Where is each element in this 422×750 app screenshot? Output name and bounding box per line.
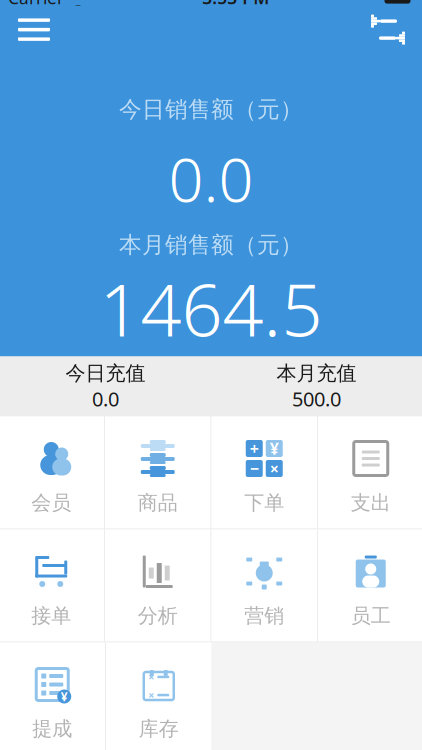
staticText: 本月销售额（元） xyxy=(119,231,303,259)
button[interactable]: ¥ xyxy=(0,642,105,750)
staticText: Carrier xyxy=(8,0,64,9)
staticText: 0.0 xyxy=(92,385,119,412)
staticText: 库存 xyxy=(139,716,179,741)
staticText: 下单 xyxy=(244,490,284,515)
staticText: − xyxy=(250,458,259,479)
staticText: 今日充值 xyxy=(65,361,145,385)
staticText: 0.0 xyxy=(168,137,253,219)
button[interactable]: 营销 xyxy=(211,529,317,641)
button[interactable]: 员工 xyxy=(318,529,422,641)
button[interactable]: 分析 xyxy=(105,529,210,641)
staticText: 分析 xyxy=(138,603,178,628)
staticText: 本月充值 xyxy=(276,361,356,385)
staticText: 支出 xyxy=(351,490,391,515)
staticText: 会员 xyxy=(31,490,71,515)
button[interactable]: 支出 xyxy=(318,416,422,528)
button[interactable]: 会员 xyxy=(0,416,104,528)
staticText: 1464.5 xyxy=(99,261,322,356)
staticText: 员工 xyxy=(351,603,391,628)
staticText: 提成 xyxy=(32,716,72,741)
staticText: × xyxy=(148,688,154,702)
button[interactable]: Switch store xyxy=(360,8,416,52)
staticText: 接单 xyxy=(31,603,71,628)
staticText: 500.0 xyxy=(292,385,341,412)
button[interactable]: × xyxy=(106,642,211,750)
staticText: + xyxy=(250,438,259,459)
staticText: 营销 xyxy=(244,603,284,628)
staticText: × xyxy=(148,670,154,684)
button[interactable]: Menu xyxy=(6,8,62,52)
button[interactable]: 商品 xyxy=(105,416,210,528)
staticText: 3:53 PM xyxy=(202,0,269,9)
button[interactable]: + xyxy=(211,416,317,528)
staticText: ¥ xyxy=(61,688,68,704)
button[interactable]: 接单 xyxy=(0,529,104,641)
staticText: 今日销售额（元） xyxy=(119,96,303,123)
staticText: × xyxy=(270,458,279,479)
staticText: ¥ xyxy=(270,438,279,459)
staticText: 商品 xyxy=(138,490,178,515)
